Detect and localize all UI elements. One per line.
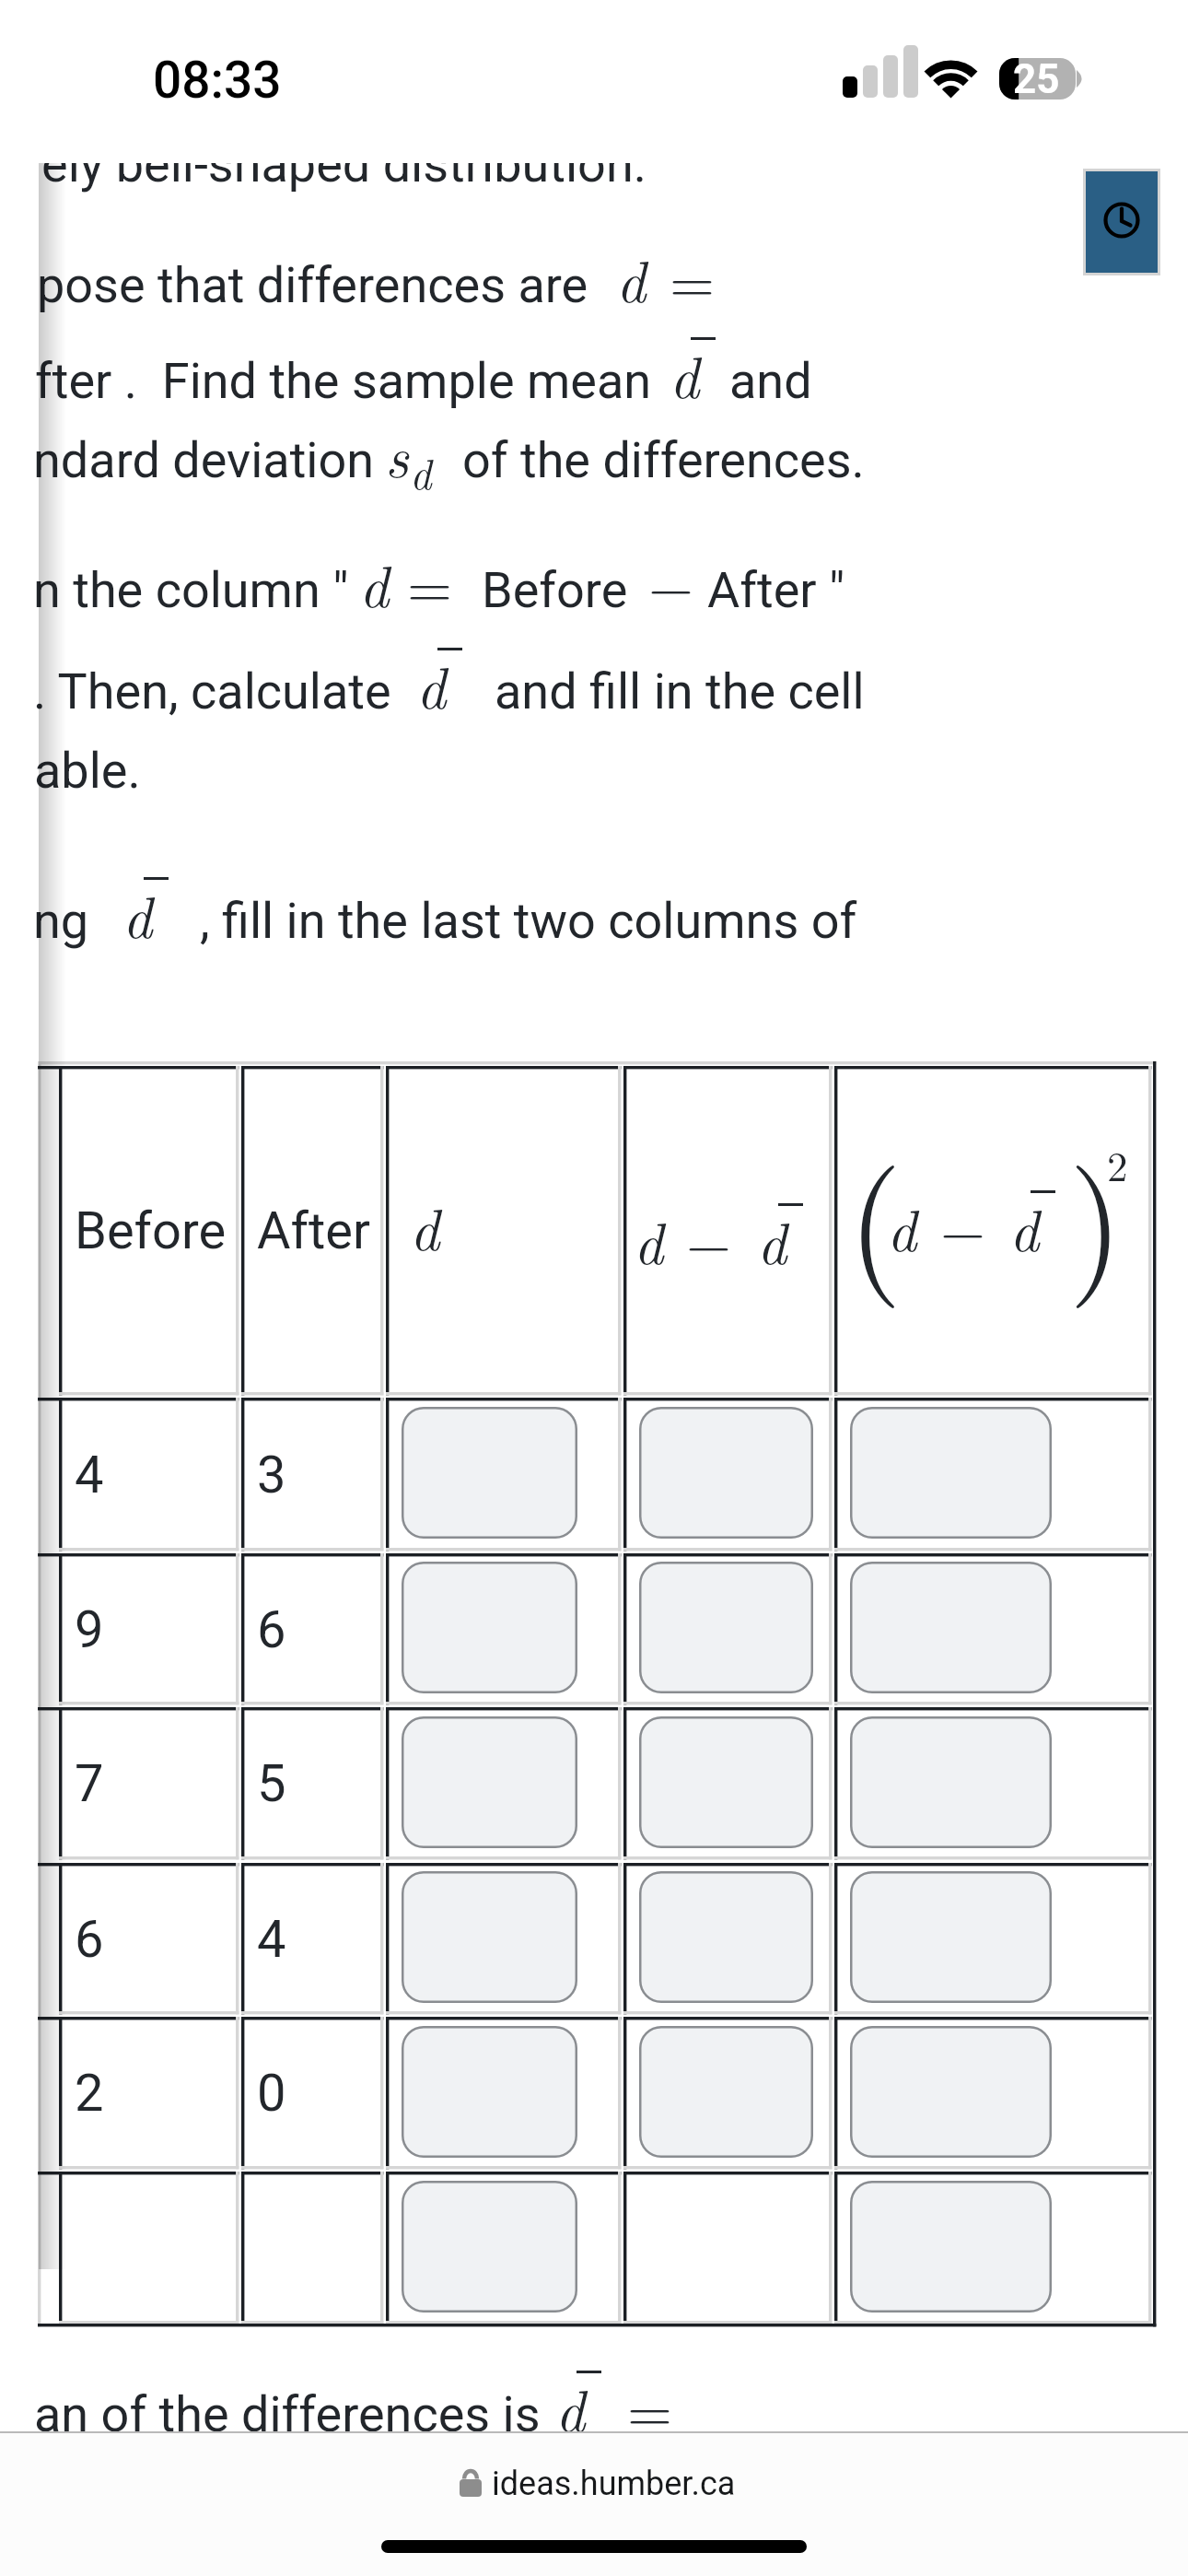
staticText: Before bbox=[482, 561, 628, 619]
staticText: 6 bbox=[75, 1909, 104, 1970]
button[interactable]: ideas.humber.ca bbox=[0, 2432, 1188, 2535]
staticText: , fill in the last two columns of bbox=[200, 892, 857, 950]
staticText: ) bbox=[1068, 1112, 1124, 1313]
button[interactable]: Answer input bbox=[639, 1716, 813, 1848]
button[interactable]: Answer input bbox=[402, 1716, 577, 1848]
staticText: ( bbox=[847, 1112, 903, 1313]
staticText: 9 bbox=[75, 1599, 104, 1660]
staticText: ng bbox=[33, 892, 89, 950]
staticText: d bbox=[1009, 1186, 1040, 1268]
staticText: an of the differences is bbox=[34, 2385, 541, 2432]
staticText: ndard deviation bbox=[33, 431, 375, 489]
staticText: d bbox=[616, 237, 646, 319]
button[interactable]: Answer input bbox=[402, 2181, 577, 2313]
staticText: d bbox=[410, 1185, 440, 1267]
staticText: After bbox=[257, 1200, 370, 1261]
staticText: and fill in the cell bbox=[495, 662, 865, 720]
button[interactable]: Answer input bbox=[850, 1716, 1052, 1848]
staticText: d bbox=[887, 1186, 917, 1268]
staticText: ely bell-shaped distribution. bbox=[41, 163, 646, 193]
staticText: 4 bbox=[257, 1909, 286, 1970]
staticText: and bbox=[729, 352, 812, 410]
staticText: 7 bbox=[75, 1753, 104, 1814]
staticText: d bbox=[410, 441, 432, 501]
staticText: − bbox=[648, 542, 694, 624]
staticText: 5 bbox=[257, 1753, 286, 1814]
button[interactable]: Answer input bbox=[850, 1407, 1052, 1539]
staticText: − bbox=[686, 1199, 732, 1281]
staticText: d bbox=[555, 2366, 586, 2432]
staticText: pose that differences are bbox=[37, 256, 588, 314]
staticText: 2 bbox=[75, 2063, 104, 2124]
staticText: n the column " bbox=[33, 561, 349, 619]
staticText: = bbox=[627, 2366, 673, 2432]
staticText: = bbox=[670, 237, 716, 319]
button[interactable]: Answer input bbox=[402, 2026, 577, 2158]
button[interactable]: Answer input bbox=[402, 1562, 577, 1693]
staticText: After " bbox=[707, 561, 845, 619]
staticText: of the differences. bbox=[462, 431, 865, 489]
staticText: d bbox=[634, 1199, 664, 1281]
staticText: − bbox=[940, 1186, 986, 1268]
staticText: d bbox=[670, 333, 700, 415]
button[interactable]: Answer input bbox=[850, 1871, 1052, 2003]
staticText: 2 bbox=[1107, 1134, 1128, 1193]
staticText: Before bbox=[75, 1200, 227, 1261]
staticText: d bbox=[122, 872, 153, 954]
staticText: = bbox=[407, 542, 453, 624]
staticText: 4 bbox=[75, 1445, 104, 1505]
staticText: d bbox=[757, 1199, 787, 1281]
staticText: ideas.humber.ca bbox=[492, 2465, 736, 2503]
button[interactable]: Answer input bbox=[850, 2026, 1052, 2158]
button[interactable]: Answer input bbox=[639, 1562, 813, 1693]
button[interactable]: Answer input bbox=[850, 1562, 1052, 1693]
button[interactable]: Answer input bbox=[850, 2181, 1052, 2313]
button[interactable]: Answer input bbox=[639, 2026, 813, 2158]
staticText: fter . Find the sample mean bbox=[35, 352, 652, 410]
button[interactable]: Answer input bbox=[639, 1871, 813, 2003]
button[interactable]: Answer input bbox=[402, 1871, 577, 2003]
button[interactable]: Timer bbox=[1083, 169, 1160, 275]
staticText: 25 bbox=[1013, 55, 1060, 103]
button[interactable]: Answer input bbox=[639, 1407, 813, 1539]
staticText: d bbox=[416, 643, 447, 725]
staticText: 3 bbox=[257, 1445, 286, 1505]
button[interactable]: Answer input bbox=[402, 1407, 577, 1539]
staticText: 6 bbox=[257, 1599, 286, 1660]
staticText: able. bbox=[34, 742, 141, 800]
staticText: 0 bbox=[257, 2063, 286, 2124]
staticText: 08:33 bbox=[153, 51, 282, 110]
staticText: d bbox=[359, 542, 390, 624]
staticText: s bbox=[385, 412, 409, 494]
staticText: . Then, calculate bbox=[33, 662, 391, 720]
